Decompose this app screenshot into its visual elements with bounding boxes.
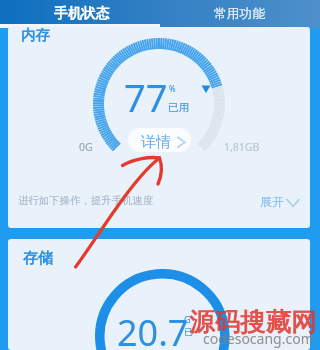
- staticText: codesocang.com: [203, 329, 314, 348]
- staticText: G: [184, 313, 191, 325]
- button[interactable]: 常用功能: [160, 0, 320, 28]
- staticText: 20.7: [117, 308, 189, 350]
- staticText: 已用: [168, 101, 189, 114]
- staticText: 详情: [141, 133, 171, 152]
- staticText: 源码搜藏网: [189, 306, 317, 338]
- staticText: 常用功能: [214, 6, 266, 22]
- staticText: 1,81GB: [224, 140, 260, 154]
- staticText: 77: [124, 71, 168, 123]
- staticText: 手机状态: [54, 5, 110, 22]
- staticText: 存储: [23, 249, 53, 268]
- button[interactable]: [128, 128, 191, 152]
- staticText: %: [169, 83, 176, 94]
- staticText: 进行如下操作，提升手机速度: [18, 194, 154, 207]
- button[interactable]: 展开: [260, 194, 300, 209]
- staticText: 展开: [260, 194, 284, 209]
- button[interactable]: 手机状态: [0, 0, 160, 28]
- staticText: 内存: [21, 27, 50, 44]
- staticText: 已: [184, 326, 193, 337]
- staticText: 0G: [79, 140, 93, 154]
